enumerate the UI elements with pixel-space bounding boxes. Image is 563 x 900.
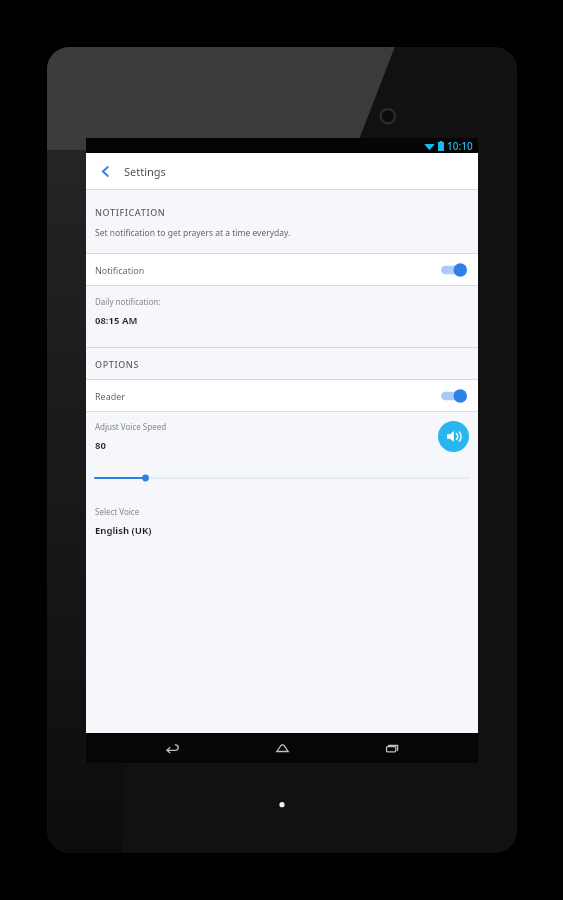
staticText: 10:10: [447, 139, 473, 153]
button[interactable]: Toggle: [441, 389, 467, 403]
staticText: Select Voice: [95, 506, 140, 517]
staticText: Notification: [95, 264, 145, 276]
button[interactable]: Play voice sample: [438, 421, 469, 452]
staticText: English (UK): [95, 524, 152, 537]
button[interactable]: Toggle: [441, 263, 467, 277]
button[interactable]: Select Voice: [86, 496, 478, 553]
staticText: Adjust Voice Speed: [95, 421, 167, 432]
button[interactable]: Recents: [337, 733, 447, 763]
staticText: Reader: [95, 390, 126, 402]
staticText: Daily notification:: [95, 296, 161, 307]
button[interactable]: Reader: [86, 380, 478, 411]
button[interactable]: Daily notification:: [86, 286, 478, 347]
button[interactable]: Voice speed slider: [86, 460, 478, 496]
button[interactable]: Home: [227, 733, 337, 763]
button[interactable]: Notification: [86, 254, 478, 285]
staticText: 08:15 AM: [95, 314, 138, 327]
button[interactable]: Back: [86, 153, 124, 189]
staticText: Settings: [124, 164, 166, 179]
staticText: 80: [95, 439, 106, 452]
staticText: OPTIONS: [95, 358, 139, 370]
staticText: Set notification to get prayers at a tim…: [95, 227, 291, 239]
staticText: NOTIFICATION: [95, 206, 166, 218]
button[interactable]: Back: [117, 733, 227, 763]
